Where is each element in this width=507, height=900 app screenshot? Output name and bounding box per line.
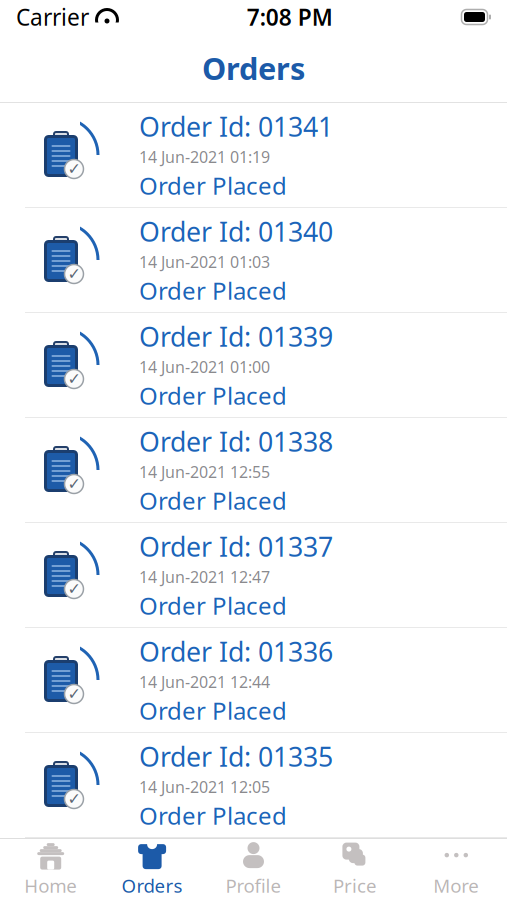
staticText: Order Id: 01339 xyxy=(139,319,333,354)
staticText: Order Id: 01340 xyxy=(139,214,333,249)
button[interactable]: More xyxy=(406,839,507,900)
staticText: ✓ xyxy=(67,580,80,598)
staticText: Order Placed xyxy=(139,589,287,621)
staticText: ✓ xyxy=(67,160,80,178)
staticText: ✓ xyxy=(67,790,80,808)
staticText: Order Id: 01337 xyxy=(139,529,333,564)
button[interactable]: ✓ xyxy=(0,208,507,313)
button[interactable]: ✓ xyxy=(0,313,507,418)
button[interactable]: ✓ xyxy=(0,628,507,733)
button[interactable]: Profile xyxy=(203,839,304,900)
staticText: ✓ xyxy=(67,475,80,493)
staticText: Order Placed xyxy=(139,274,287,306)
staticText: 14 Jun-2021 12:47 xyxy=(139,566,270,587)
staticText: Orders xyxy=(202,48,305,88)
staticText: 14 Jun-2021 12:05 xyxy=(139,776,270,797)
staticText: Order Id: 01335 xyxy=(139,739,333,774)
staticText: 7:08 PM xyxy=(247,2,333,32)
staticText: Order Placed xyxy=(139,694,287,726)
staticText: ✓ xyxy=(67,685,80,703)
staticText: Order Placed xyxy=(139,169,287,201)
button[interactable]: Orders xyxy=(101,839,203,900)
staticText: 14 Jun-2021 12:55 xyxy=(139,461,270,482)
staticText: Order Id: 01336 xyxy=(139,634,333,669)
staticText: Profile xyxy=(225,873,281,898)
staticText: Order Id: 01338 xyxy=(139,424,333,459)
staticText: 14 Jun-2021 12:44 xyxy=(139,671,270,692)
button[interactable]: ✓ xyxy=(0,103,507,208)
staticText: Orders xyxy=(122,873,183,898)
button[interactable]: Price xyxy=(304,839,406,900)
staticText: Order Placed xyxy=(139,379,287,411)
button[interactable]: ✓ xyxy=(0,733,507,838)
staticText: 14 Jun-2021 01:00 xyxy=(139,356,270,377)
staticText: ✓ xyxy=(67,265,80,283)
button[interactable]: Home xyxy=(0,839,101,900)
staticText: ✓ xyxy=(67,370,80,388)
staticText: 14 Jun-2021 01:03 xyxy=(139,251,270,272)
staticText: Home xyxy=(24,873,77,898)
staticText: Order Placed xyxy=(139,799,287,831)
button[interactable]: ✓ xyxy=(0,418,507,523)
staticText: Order Id: 01341 xyxy=(139,109,333,144)
staticText: Order Placed xyxy=(139,484,287,516)
staticText: More xyxy=(433,873,479,898)
button[interactable]: ✓ xyxy=(0,523,507,628)
staticText: Carrier xyxy=(16,2,89,32)
staticText: 14 Jun-2021 01:19 xyxy=(139,146,270,167)
staticText: Price xyxy=(333,873,377,898)
